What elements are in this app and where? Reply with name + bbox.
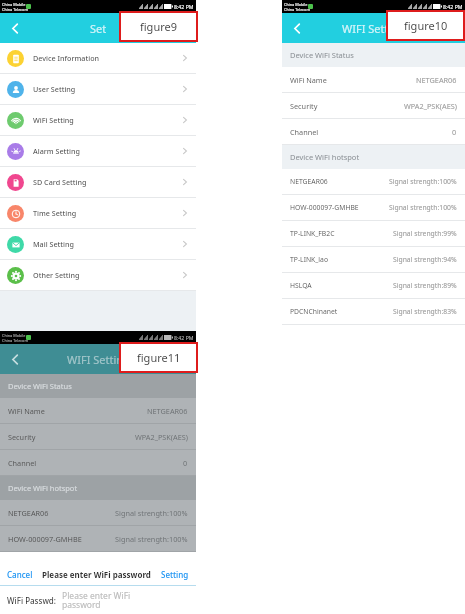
button[interactable]: Alarm Setting bbox=[0, 136, 196, 167]
button[interactable]: Setting bbox=[161, 569, 189, 580]
button[interactable]: Back bbox=[0, 344, 30, 374]
staticText: Device Information bbox=[33, 53, 100, 63]
staticText: Setting bbox=[161, 569, 189, 580]
staticText: 8:42 PM bbox=[443, 3, 463, 10]
button[interactable]: WiFi Name bbox=[0, 398, 196, 424]
staticText: China Mobile bbox=[284, 2, 308, 7]
button[interactable]: Channel bbox=[282, 119, 465, 145]
button[interactable]: Security bbox=[282, 93, 465, 119]
staticText: 8:42 PM bbox=[174, 3, 194, 10]
staticText: 0 bbox=[183, 458, 188, 468]
staticText: figure10 bbox=[404, 18, 448, 33]
staticText: China Telecom bbox=[284, 7, 310, 12]
button[interactable]: Back bbox=[282, 13, 312, 43]
staticText: 0 bbox=[452, 127, 457, 137]
staticText: China Telecom bbox=[2, 7, 28, 12]
button[interactable]: WiFi Setting bbox=[0, 105, 196, 136]
staticText: HOW-000097-GMHBE bbox=[8, 534, 82, 544]
staticText: Channel bbox=[8, 458, 37, 468]
button[interactable]: User Setting bbox=[0, 74, 196, 105]
button[interactable]: NETGEAR06 bbox=[0, 500, 196, 526]
staticText: 8:42 PM bbox=[174, 334, 194, 341]
staticText: Signal strength:100% bbox=[115, 508, 188, 518]
staticText: China Mobile bbox=[2, 333, 26, 338]
staticText: WiFi Setting bbox=[33, 115, 74, 125]
staticText: Signal strength:100% bbox=[389, 203, 457, 212]
button[interactable]: Other Setting bbox=[0, 260, 196, 291]
button[interactable]: HOW-000097-GMHBE bbox=[0, 526, 196, 552]
staticText: Set bbox=[90, 21, 107, 36]
button[interactable]: HOW-000097-GMHBE bbox=[282, 195, 465, 221]
staticText: Security bbox=[8, 432, 36, 442]
staticText: WPA2_PSK(AES) bbox=[135, 432, 188, 442]
button[interactable]: TP-LINK_lao bbox=[282, 247, 465, 273]
staticText: WIFI Setting bbox=[342, 21, 405, 36]
staticText: Device WiFi hotspot bbox=[290, 152, 360, 162]
staticText: User Setting bbox=[33, 84, 76, 94]
staticText: NETGEAR06 bbox=[290, 177, 328, 186]
staticText: Alarm Setting bbox=[33, 146, 80, 156]
staticText: PDCNChinanet bbox=[290, 307, 338, 316]
staticText: Mail Setting bbox=[33, 239, 74, 249]
button[interactable]: Mail Setting bbox=[0, 229, 196, 260]
staticText: Please enter WiFi password bbox=[42, 569, 151, 580]
staticText: NETGEAR06 bbox=[147, 406, 188, 416]
staticText: Channel bbox=[290, 127, 319, 137]
staticText: Signal strength:99% bbox=[393, 229, 457, 238]
button[interactable]: NETGEAR06 bbox=[282, 169, 465, 195]
staticText: WIFI Setting bbox=[67, 352, 130, 367]
staticText: TP-LINK_FB2C bbox=[290, 229, 335, 238]
staticText: figure9 bbox=[140, 19, 178, 34]
staticText: Signal strength:100% bbox=[115, 534, 188, 544]
staticText: Signal strength:94% bbox=[393, 255, 457, 264]
staticText: Please enter WiFi password bbox=[62, 590, 131, 611]
staticText: TP-LINK_lao bbox=[290, 255, 329, 264]
staticText: HOW-000097-GMHBE bbox=[290, 203, 359, 212]
button[interactable]: Please enter WiFi password bbox=[62, 586, 196, 614]
staticText: Device WiFi hotspot bbox=[8, 483, 78, 493]
staticText: WiFi Name bbox=[290, 75, 327, 85]
staticText: Signal strength:89% bbox=[393, 281, 457, 290]
staticText: HSLQA bbox=[290, 281, 312, 290]
staticText: Time Setting bbox=[33, 208, 77, 218]
staticText: China Mobile bbox=[2, 2, 26, 7]
staticText: Device WiFi Status bbox=[290, 50, 354, 60]
button[interactable]: TP-LINK_FB2C bbox=[282, 221, 465, 247]
button[interactable]: WiFi Name bbox=[282, 67, 465, 93]
button[interactable]: Back bbox=[0, 13, 30, 43]
button[interactable]: Channel bbox=[0, 450, 196, 476]
staticText: WiFi Name bbox=[8, 406, 45, 416]
staticText: Other Setting bbox=[33, 270, 80, 280]
staticText: NETGEAR06 bbox=[8, 508, 49, 518]
staticText: Device WiFi Status bbox=[8, 381, 72, 391]
button[interactable]: PDCNChinanet bbox=[282, 299, 465, 325]
staticText: WPA2_PSK(AES) bbox=[404, 101, 457, 111]
button[interactable]: HSLQA bbox=[282, 273, 465, 299]
staticText: China Telecom bbox=[2, 338, 28, 343]
button[interactable]: Security bbox=[0, 424, 196, 450]
staticText: figure11 bbox=[137, 350, 181, 365]
staticText: Cancel bbox=[7, 569, 33, 580]
staticText: Signal strength:83% bbox=[393, 307, 457, 316]
button[interactable]: Cancel bbox=[7, 569, 33, 580]
button[interactable]: SD Card Setting bbox=[0, 167, 196, 198]
button[interactable]: Device Information bbox=[0, 43, 196, 74]
staticText: WiFi Passwd: bbox=[7, 595, 56, 606]
staticText: Security bbox=[290, 101, 318, 111]
button[interactable]: Time Setting bbox=[0, 198, 196, 229]
staticText: NETGEAR06 bbox=[416, 75, 457, 85]
staticText: SD Card Setting bbox=[33, 177, 87, 187]
staticText: Signal strength:100% bbox=[389, 177, 457, 186]
